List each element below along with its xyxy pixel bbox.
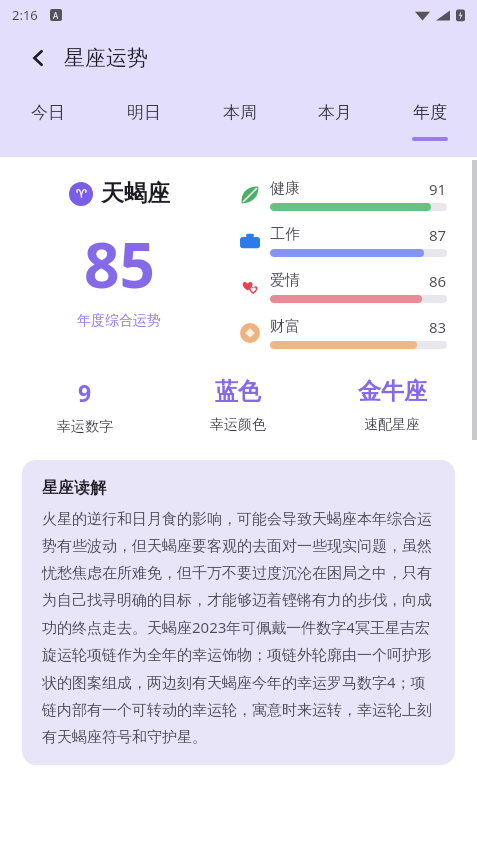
staticText: 健康 bbox=[270, 179, 300, 198]
staticText: 今日 bbox=[31, 102, 65, 123]
staticText: 本月 bbox=[318, 102, 352, 123]
button[interactable]: Back bbox=[20, 40, 56, 76]
staticText: 工作 bbox=[270, 225, 300, 244]
staticText: 9 bbox=[78, 377, 92, 408]
staticText: 年度综合运势 bbox=[77, 312, 161, 330]
staticText: 幸运数字 bbox=[57, 418, 113, 436]
staticText: 爱情 bbox=[270, 271, 300, 290]
staticText: 金牛座 bbox=[358, 377, 427, 406]
staticText: A bbox=[53, 10, 59, 21]
staticText: 本周 bbox=[223, 102, 257, 123]
staticText: 83 bbox=[429, 317, 447, 337]
staticText: 财富 bbox=[270, 317, 300, 336]
staticText: 明日 bbox=[127, 102, 161, 123]
staticText: 87 bbox=[429, 225, 447, 245]
staticText: 91 bbox=[429, 179, 447, 199]
staticText: 年度 bbox=[413, 102, 447, 123]
button[interactable]: 年度 bbox=[382, 86, 477, 157]
button[interactable]: 今日 bbox=[0, 86, 96, 157]
button[interactable]: 明日 bbox=[96, 86, 192, 157]
staticText: 86 bbox=[429, 271, 447, 291]
staticText: ♈ bbox=[76, 187, 87, 201]
staticText: 85 bbox=[84, 222, 155, 306]
staticText: 蓝色 bbox=[215, 377, 261, 406]
staticText: 星座运势 bbox=[64, 45, 148, 71]
staticText: 2:16 bbox=[12, 6, 38, 24]
button[interactable]: 本月 bbox=[287, 86, 382, 157]
staticText: 火星的逆行和日月食的影响，可能会导致天蝎座本年综合运势有些波动，但天蝎座要客观的… bbox=[42, 510, 435, 747]
staticText: 幸运颜色 bbox=[210, 416, 266, 434]
staticText: 天蝎座 bbox=[101, 179, 170, 208]
staticText: 星座读解 bbox=[42, 478, 106, 498]
staticText: 速配星座 bbox=[364, 416, 420, 434]
button[interactable]: 本周 bbox=[192, 86, 287, 157]
